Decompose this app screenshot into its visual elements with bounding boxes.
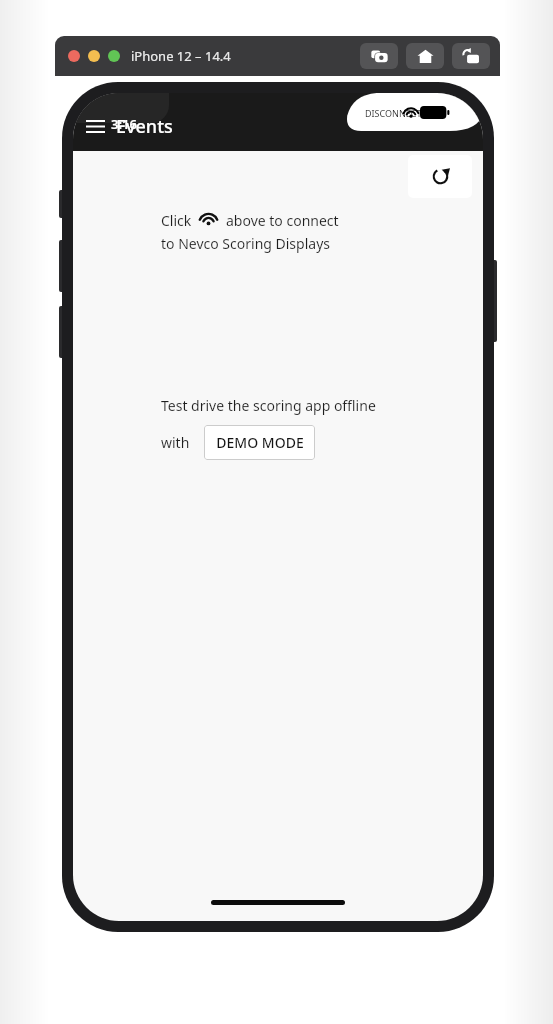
staticText: DISCONNECTED xyxy=(365,107,434,119)
staticText: Click xyxy=(161,211,192,230)
button[interactable]: DEMO MODE xyxy=(204,425,315,460)
button[interactable]: Minimize xyxy=(88,50,100,62)
button[interactable]: Share xyxy=(452,43,490,69)
button[interactable]: Refresh xyxy=(408,155,472,198)
staticText: iPhone 12 – 14.4 xyxy=(131,47,231,65)
other: Wi-Fi status xyxy=(403,104,419,120)
staticText: DEMO MODE xyxy=(216,433,304,452)
button[interactable]: Screenshot xyxy=(360,43,398,69)
staticText: above to connect xyxy=(226,211,339,230)
staticText: to Nevco Scoring Displays xyxy=(161,234,330,253)
other: Wi-Fi xyxy=(199,209,218,228)
button[interactable]: Open navigation menu xyxy=(77,108,113,144)
button[interactable]: Close xyxy=(68,50,80,62)
staticText: Test drive the scoring app offline xyxy=(161,396,376,415)
staticText: with xyxy=(161,433,190,452)
button[interactable]: Events xyxy=(116,114,173,139)
other: Battery xyxy=(420,106,450,119)
button[interactable]: Zoom xyxy=(108,50,120,62)
staticText: 3:16 xyxy=(111,115,137,133)
button[interactable]: Home xyxy=(406,43,444,69)
